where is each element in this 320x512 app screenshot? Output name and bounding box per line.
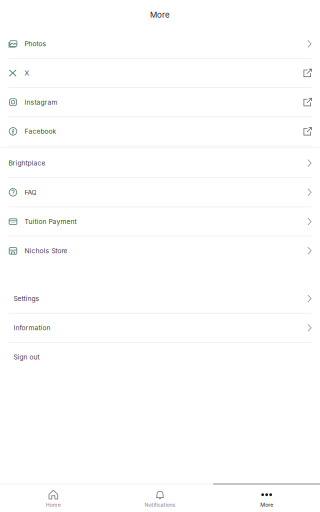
staticText: Instagram	[24, 98, 57, 106]
button[interactable]: Home	[0, 484, 107, 512]
staticText: Information	[13, 324, 50, 332]
staticText: Facebook	[24, 127, 56, 135]
button[interactable]: X	[0, 59, 320, 87]
button[interactable]: FAQ	[0, 178, 320, 206]
button[interactable]: Instagram	[0, 88, 320, 116]
button[interactable]: Notifications	[107, 484, 213, 512]
staticText: FAQ	[24, 188, 36, 196]
staticText: Photos	[24, 40, 46, 48]
staticText: More	[150, 10, 170, 20]
button[interactable]: Sign out	[0, 343, 320, 371]
staticText: Brightplace	[8, 159, 45, 167]
button[interactable]: Nichols Store	[0, 236, 320, 265]
button[interactable]: More	[213, 484, 320, 512]
button[interactable]: Brightplace	[0, 149, 320, 177]
button[interactable]: Information	[0, 314, 320, 342]
button[interactable]: Facebook	[0, 117, 320, 146]
staticText: X	[24, 69, 29, 77]
staticText: Notifications	[144, 501, 175, 508]
button[interactable]: Tuition Payment	[0, 207, 320, 236]
staticText: Home	[46, 501, 61, 508]
staticText: Settings	[13, 295, 39, 303]
staticText: More	[260, 501, 273, 508]
staticText: Sign out	[13, 353, 39, 361]
button[interactable]: Photos	[0, 30, 320, 58]
button[interactable]: Settings	[0, 284, 320, 313]
staticText: Nichols Store	[24, 247, 67, 255]
staticText: Tuition Payment	[24, 217, 76, 226]
